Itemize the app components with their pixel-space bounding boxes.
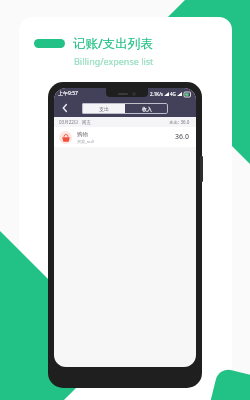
staticText: 2.1K/s (150, 91, 163, 97)
button[interactable]: Back (58, 101, 72, 115)
staticText: 支出 (99, 106, 109, 112)
staticText: 03月22日 周五 (59, 119, 91, 125)
staticText: 4G (170, 91, 176, 97)
staticText: 支出: 36.0 (169, 119, 190, 125)
button[interactable]: 购物 (54, 127, 196, 147)
button[interactable]: 支出 (82, 103, 125, 114)
staticText: Billing/expense list (74, 55, 154, 67)
staticText: 记账/支出列表 (73, 35, 153, 52)
staticText: 购物 (77, 131, 88, 138)
button[interactable]: 收入 (125, 103, 168, 114)
staticText: 36.0 (175, 132, 189, 142)
staticText: 上午9:57 (58, 90, 78, 97)
staticText: 买菜_null (77, 139, 94, 144)
staticText: 收入 (142, 106, 152, 112)
